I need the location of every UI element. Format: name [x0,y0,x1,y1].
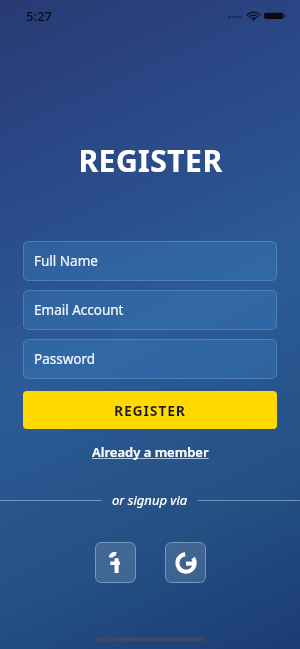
staticText: Password [34,350,96,368]
staticText: or signup via [112,491,188,509]
button[interactable]: Sign up with Facebook [95,542,136,583]
button[interactable]: Full Name [23,241,277,281]
staticText: REGISTER [114,401,186,420]
button[interactable]: Email Account [23,290,277,330]
staticText: Full Name [34,252,98,270]
button[interactable]: Already a member [84,441,217,463]
staticText: 5:27 [26,7,52,25]
staticText: Email Account [34,301,124,319]
button[interactable]: Sign up with Google [165,542,206,583]
staticText: Already a member [92,443,209,461]
button[interactable]: REGISTER [23,391,277,429]
staticText: REGISTER [78,140,223,181]
button[interactable]: Password [23,339,277,379]
